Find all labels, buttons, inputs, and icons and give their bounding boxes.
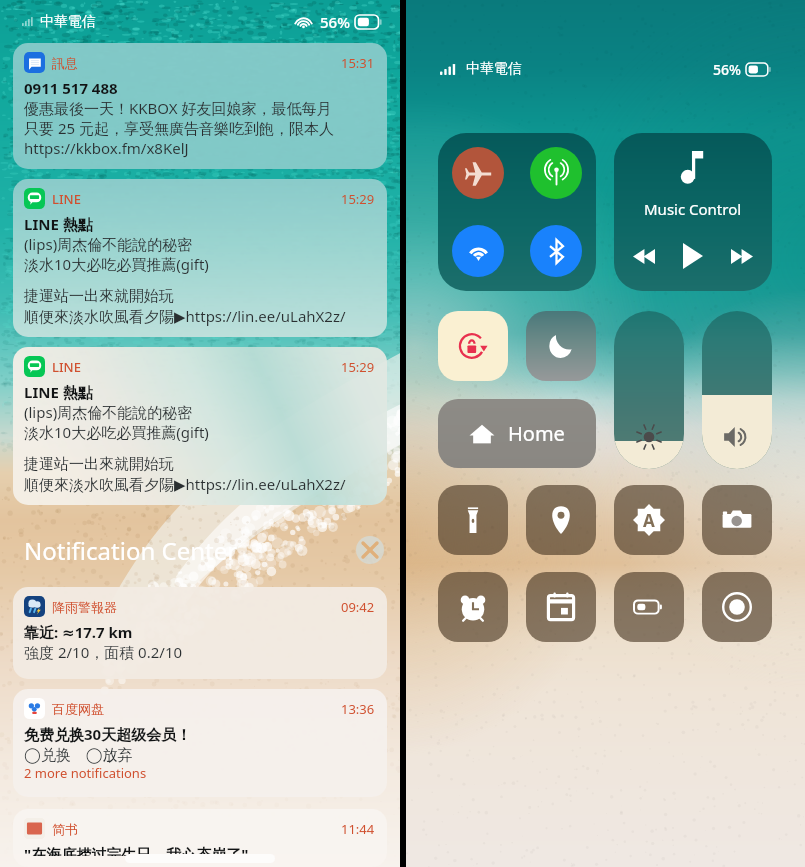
button[interactable]: Bluetooth	[530, 225, 582, 277]
button[interactable]: 訊息	[13, 43, 387, 169]
staticText: 0911 517 488	[24, 78, 118, 98]
staticText: "在海底捞过完生日，我心态崩了"	[24, 844, 249, 856]
staticText: A	[643, 509, 655, 532]
staticText: 15:29	[341, 358, 375, 376]
staticText: 中華電信	[40, 13, 96, 31]
staticText: (lips)周杰倫不能說的秘密	[24, 234, 193, 254]
staticText: 優惠最後一天！KKBOX 好友回娘家，最低每月	[24, 98, 332, 118]
button[interactable]: Previous	[628, 240, 660, 272]
staticText: LINE	[52, 190, 81, 208]
button[interactable]: LINE	[13, 179, 387, 337]
button[interactable]: LINE	[13, 347, 387, 505]
button[interactable]: Do not disturb	[526, 311, 596, 381]
staticText: 简书	[52, 821, 78, 837]
button[interactable]: 百度网盘	[13, 689, 387, 797]
button[interactable]: Volume	[702, 311, 772, 469]
staticText: 只要 25 元起，享受無廣告音樂吃到飽，限本人	[24, 118, 334, 138]
button[interactable]: Flashlight	[438, 485, 508, 555]
button[interactable]: Camera	[702, 485, 772, 555]
button[interactable]: 简书	[13, 809, 387, 867]
button[interactable]: Cellular data	[530, 147, 582, 199]
staticText: Notification Center	[24, 534, 238, 567]
staticText: LINE 熱點	[24, 382, 93, 402]
button[interactable]: 降雨警報器	[13, 587, 387, 679]
staticText: ◯兑换 ◯放弃	[24, 744, 133, 764]
staticText: Home	[508, 420, 565, 447]
staticText: LINE	[52, 358, 81, 376]
button[interactable]: Next	[726, 240, 758, 272]
button[interactable]: Airplane mode	[452, 147, 504, 199]
staticText: 淡水10大必吃必買推薦(gift)	[24, 254, 209, 274]
staticText: 捷運站一出來就開始玩	[24, 455, 174, 474]
staticText: 降雨警報器	[52, 599, 117, 615]
button[interactable]: Screen record	[702, 572, 772, 642]
button[interactable]: Auto brightness	[614, 485, 684, 555]
staticText: 強度 2/10，面積 0.2/10	[24, 642, 183, 662]
button[interactable]: Music Control	[614, 133, 772, 291]
staticText: 11:44	[341, 820, 375, 838]
button[interactable]: Low power mode	[614, 572, 684, 642]
button[interactable]: Maps	[526, 485, 596, 555]
button[interactable]: Alarm	[438, 572, 508, 642]
staticText: 順便來淡水吹風看夕陽▶https://lin.ee/uLahX2z/czvn	[24, 474, 375, 494]
staticText: 捷運站一出來就開始玩	[24, 287, 174, 306]
staticText: 56%	[713, 60, 741, 79]
staticText: https://kkbox.fm/x8KelJ	[24, 138, 189, 158]
button[interactable]: Wi-Fi	[452, 225, 504, 277]
staticText: 中華電信	[466, 60, 522, 78]
staticText: 順便來淡水吹風看夕陽▶https://lin.ee/uLahX2z/czvn	[24, 306, 375, 326]
button[interactable]: Play	[676, 239, 710, 273]
button[interactable]: Airplane mode	[438, 133, 596, 291]
staticText: 免费兑换30天超级会员！	[24, 724, 192, 744]
staticText: 2 more notifications	[24, 764, 147, 782]
staticText: 15:29	[341, 190, 375, 208]
button[interactable]: Rotation lock	[438, 311, 508, 381]
staticText: 56%	[320, 12, 350, 32]
staticText: 15:31	[341, 54, 375, 72]
staticText: Music Control	[644, 199, 742, 219]
staticText: 訊息	[52, 55, 78, 71]
button[interactable]: Clear notifications	[356, 536, 384, 564]
staticText: 13:36	[341, 700, 375, 718]
button[interactable]: Home	[438, 399, 596, 468]
staticText: 09:42	[341, 598, 375, 616]
staticText: LINE 熱點	[24, 214, 93, 234]
button[interactable]: Calendar	[526, 572, 596, 642]
staticText: (lips)周杰倫不能說的秘密	[24, 402, 193, 422]
button[interactable]: Brightness	[614, 311, 684, 469]
staticText: 百度网盘	[52, 701, 104, 717]
staticText: 淡水10大必吃必買推薦(gift)	[24, 422, 209, 442]
staticText: 靠近: ≈17.7 km	[24, 622, 133, 642]
